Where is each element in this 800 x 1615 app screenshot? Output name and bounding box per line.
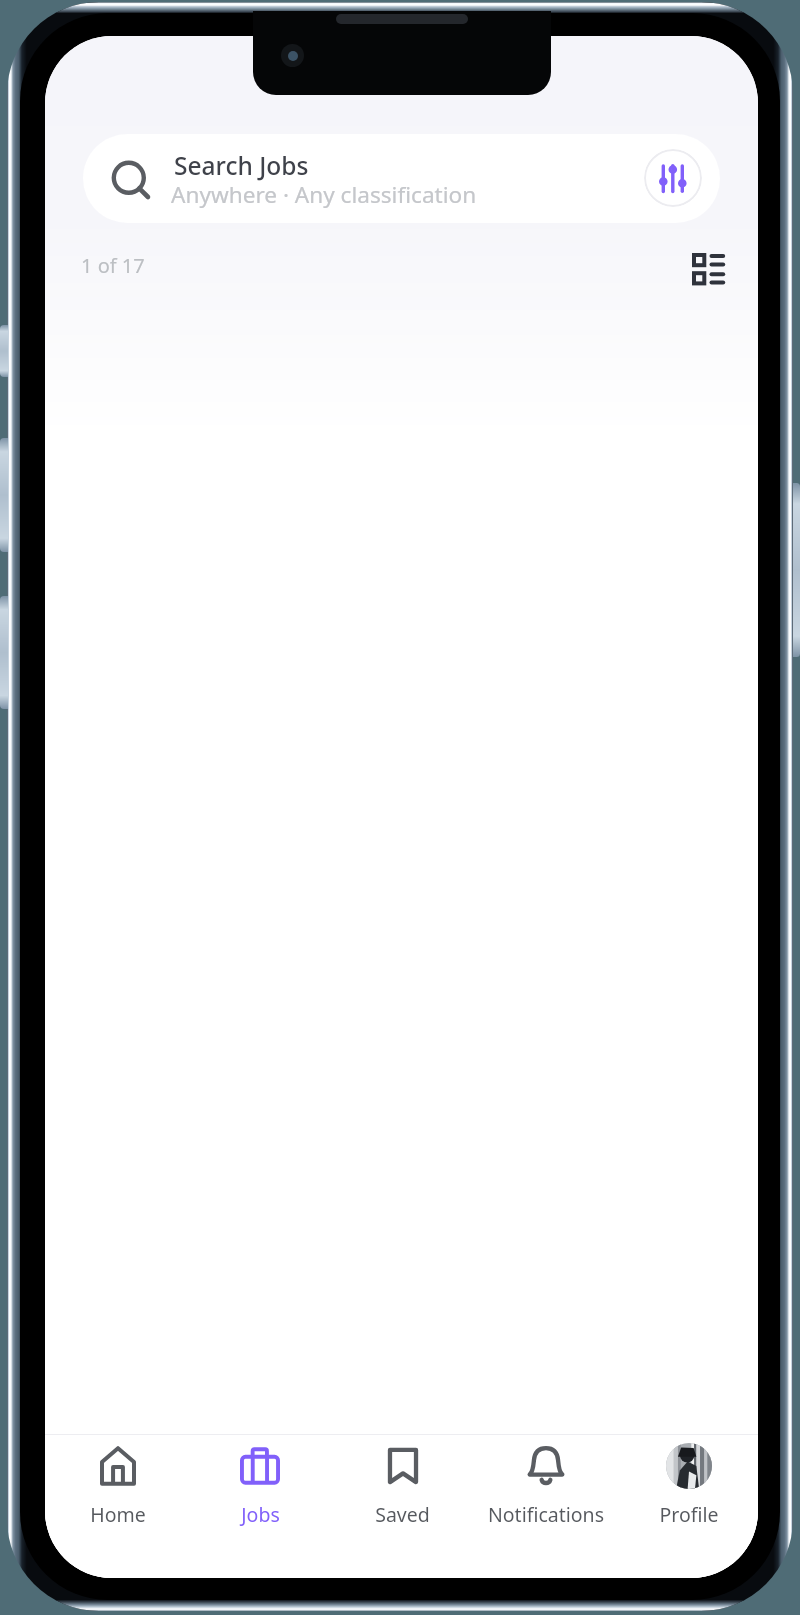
button[interactable]: Profile [617,1435,758,1528]
button[interactable]: Jobs [189,1435,331,1528]
staticText: Notifications [488,1501,604,1528]
staticText: Search Jobs [174,149,309,182]
button[interactable]: Change view [680,241,736,297]
button[interactable]: Notifications [474,1435,617,1528]
staticText: Home [90,1501,146,1528]
staticText: Saved [375,1501,430,1528]
staticText: Profile [659,1501,719,1528]
staticText: 1 of 17 [81,252,145,279]
staticText: Anywhere · Any classification [171,179,477,210]
button[interactable]: Search Jobs [83,134,720,223]
button[interactable]: Home [47,1435,189,1528]
staticText: Jobs [241,1501,280,1528]
button[interactable]: Filters [644,149,702,207]
button[interactable]: Saved [331,1435,474,1528]
